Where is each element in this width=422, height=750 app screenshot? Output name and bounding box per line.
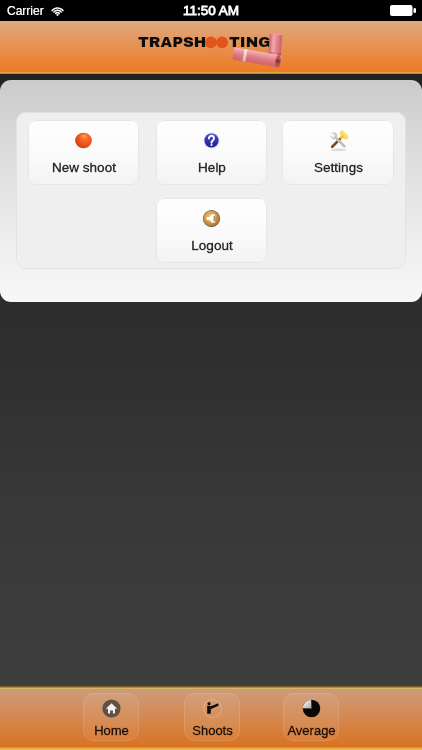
staticText: TRAPSH <box>138 34 207 50</box>
staticText: 11:50 AM <box>183 3 240 18</box>
staticText: Help <box>198 160 226 175</box>
staticText: Carrier <box>7 4 44 17</box>
button[interactable]: Average <box>283 693 339 741</box>
button[interactable]: Shoots <box>184 693 240 741</box>
staticText: Average <box>287 723 336 738</box>
staticText: New shoot <box>52 160 116 175</box>
staticText: Logout <box>191 238 233 253</box>
staticText: TING <box>229 34 271 50</box>
button[interactable]: Help <box>156 120 267 185</box>
staticText: Home <box>94 723 129 738</box>
staticText: Settings <box>314 160 363 175</box>
button[interactable]: Logout <box>156 198 267 263</box>
button[interactable]: New shoot <box>28 120 139 185</box>
staticText: Shoots <box>192 723 233 738</box>
button[interactable]: Home <box>83 693 139 741</box>
button[interactable]: Settings <box>282 120 394 185</box>
